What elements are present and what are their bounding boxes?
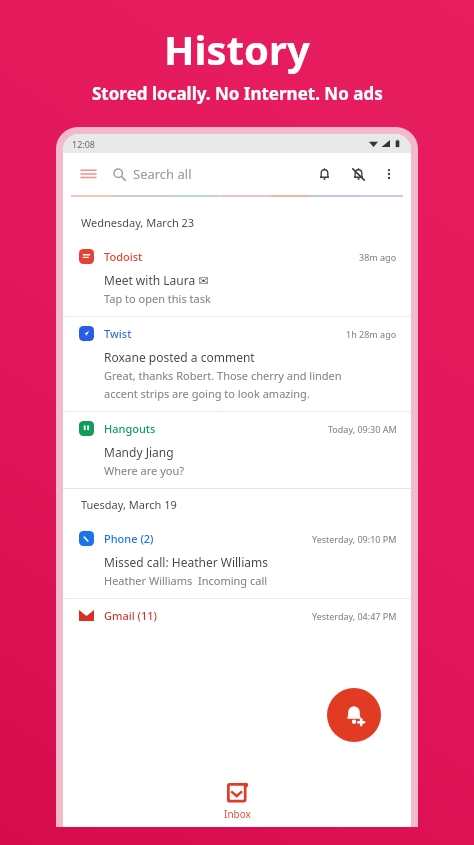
staticText: Todoist <box>104 249 143 264</box>
staticText: Roxane posted a comment <box>104 349 255 365</box>
button[interactable]: Todoist <box>63 240 411 316</box>
staticText: Inbox <box>224 807 251 821</box>
staticText: Tap to open this task <box>104 291 211 306</box>
button[interactable]: Twist <box>63 317 411 411</box>
staticText: 38m ago <box>359 251 397 263</box>
staticText: Phone (2) <box>104 531 154 546</box>
button[interactable]: Inbox <box>63 777 411 827</box>
staticText: accent strips are going to look amazing. <box>104 386 310 401</box>
staticText: Today, 09:30 AM <box>328 423 397 435</box>
button[interactable]: More options <box>377 162 401 186</box>
staticText: Heather Williams Incoming call <box>104 573 268 588</box>
staticText: Wednesday, March 23 <box>81 215 195 230</box>
staticText: Missed call: Heather Williams <box>104 554 268 570</box>
button[interactable]: Notifications <box>311 161 337 187</box>
button[interactable]: Hangouts <box>63 412 411 488</box>
button[interactable]: Menu <box>75 161 101 187</box>
staticText: Meet with Laura ✉ <box>104 272 209 288</box>
staticText: Where are you? <box>104 463 185 478</box>
staticText: Twist <box>104 326 132 341</box>
staticText: Great, thanks Robert. Those cherry and l… <box>104 368 342 383</box>
button[interactable]: Search all <box>113 165 311 183</box>
staticText: Search all <box>133 165 192 183</box>
button[interactable]: Mute notifications <box>345 161 371 187</box>
staticText: Tuesday, March 19 <box>81 497 177 512</box>
button[interactable]: Add notification <box>327 688 381 742</box>
staticText: Mandy Jiang <box>104 444 174 460</box>
staticText: 12:08 <box>72 138 96 150</box>
staticText: 1h 28m ago <box>346 328 397 340</box>
staticText: Yesterday, 04:47 PM <box>312 610 397 622</box>
button[interactable]: Phone (2) <box>63 522 411 598</box>
staticText: Gmail (11) <box>104 608 157 623</box>
staticText: Hangouts <box>104 421 156 436</box>
staticText: History <box>164 22 310 76</box>
staticText: Stored locally. No Internet. No ads <box>92 82 383 105</box>
staticText: Yesterday, 09:10 PM <box>312 533 397 545</box>
button[interactable]: Gmail (11) <box>63 599 411 633</box>
